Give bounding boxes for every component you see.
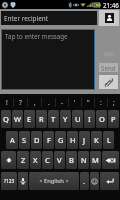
staticText: : — [100, 98, 102, 107]
staticText: 21:46 — [103, 1, 119, 9]
staticText: D — [34, 135, 40, 145]
button[interactable]: J — [79, 131, 90, 149]
staticText: X — [33, 155, 38, 165]
staticText: ' — [74, 98, 76, 107]
button[interactable]: U — [72, 110, 83, 128]
staticText: M — [92, 155, 99, 165]
button[interactable]: Tap to enter message — [2, 30, 94, 89]
button[interactable]: I — [84, 110, 95, 128]
button[interactable]: K — [91, 131, 102, 149]
button[interactable]: - — [56, 94, 68, 110]
staticText: F — [47, 135, 51, 145]
staticText: U — [75, 114, 81, 124]
staticText: P — [111, 114, 116, 124]
staticText: ! — [6, 98, 8, 107]
button[interactable]: ! — [0, 94, 13, 110]
button[interactable]: V — [54, 151, 65, 169]
button[interactable]: X — [30, 151, 41, 169]
button[interactable]: , — [28, 94, 41, 110]
button[interactable]: G — [55, 131, 66, 149]
button[interactable]: Backspace — [102, 151, 119, 169]
staticText: L — [107, 135, 111, 145]
staticText: English — [44, 177, 64, 185]
button[interactable]: P — [108, 110, 119, 128]
staticText: H — [70, 135, 76, 145]
button[interactable]: W — [12, 110, 23, 128]
button[interactable]: O — [96, 110, 107, 128]
button[interactable]: . — [42, 94, 55, 110]
staticText: ? — [19, 98, 22, 107]
button[interactable]: Z — [17, 151, 29, 169]
staticText: 160/1 — [103, 51, 115, 57]
staticText: K — [94, 135, 99, 145]
button[interactable]: Enter — [100, 172, 119, 190]
staticText: Enter recipient — [4, 14, 48, 23]
staticText: - — [61, 98, 64, 107]
button[interactable]: N — [78, 151, 89, 169]
staticText: Q — [3, 114, 9, 124]
button[interactable]: : — [95, 94, 107, 110]
button[interactable]: ? — [14, 94, 27, 110]
staticText: T — [51, 114, 56, 124]
staticText: Send — [101, 64, 116, 72]
button[interactable]: Enter recipient — [1, 11, 97, 25]
button[interactable]: ; — [108, 94, 120, 110]
button[interactable]: A — [6, 131, 18, 149]
staticText: , — [34, 98, 36, 107]
staticText: ?123 — [4, 178, 15, 185]
button[interactable]: L — [103, 131, 114, 149]
staticText: A — [10, 135, 15, 145]
button[interactable]: Emoji — [90, 172, 99, 190]
staticText: Tap to enter message — [5, 32, 68, 40]
button[interactable]: E — [24, 110, 35, 128]
staticText: C — [45, 155, 50, 165]
button[interactable]: C — [42, 151, 53, 169]
button[interactable]: B — [66, 151, 77, 169]
staticText: . — [83, 176, 86, 186]
staticText: V — [57, 155, 62, 165]
button[interactable]: Shift — [1, 151, 16, 169]
button[interactable]: T — [48, 110, 59, 128]
staticText: I — [88, 114, 91, 124]
button[interactable]: F — [43, 131, 54, 149]
staticText: . — [48, 98, 50, 107]
staticText: " — [87, 98, 90, 107]
staticText: Y — [63, 114, 68, 124]
button[interactable]: Voice input — [18, 172, 28, 190]
staticText: S — [22, 135, 27, 145]
button[interactable]: R — [36, 110, 47, 128]
button[interactable]: ' — [69, 94, 81, 110]
staticText: E — [27, 114, 32, 124]
button[interactable]: M — [90, 151, 101, 169]
button[interactable]: S — [19, 131, 30, 149]
button[interactable]: Q — [1, 110, 11, 128]
button[interactable]: Attach — [99, 75, 118, 89]
button[interactable]: Send — [99, 63, 118, 72]
button[interactable]: . — [80, 172, 89, 190]
staticText: J — [83, 135, 86, 145]
staticText: G — [58, 135, 64, 145]
staticText: W — [14, 114, 21, 124]
button[interactable]: H — [67, 131, 78, 149]
button[interactable]: " — [82, 94, 94, 110]
staticText: ; — [113, 98, 115, 107]
staticText: B — [69, 155, 74, 165]
staticText: R — [39, 114, 44, 124]
button[interactable]: English — [29, 172, 79, 190]
staticText: O — [99, 114, 105, 124]
button[interactable]: Y — [60, 110, 71, 128]
button[interactable]: D — [31, 131, 42, 149]
staticText: N — [81, 155, 87, 165]
button[interactable]: Pick contact — [99, 10, 119, 26]
button[interactable]: ?123 — [1, 172, 17, 190]
staticText: Z — [21, 155, 26, 165]
